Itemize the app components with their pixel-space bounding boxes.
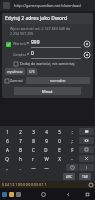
staticText: 2 bbox=[19, 129, 22, 135]
staticText: 8 bbox=[32, 138, 35, 144]
staticText: wyszlnosc bbox=[7, 69, 23, 74]
button[interactable]: Checkbox bbox=[5, 78, 23, 83]
staticText: 9 bbox=[45, 138, 48, 144]
staticText: C bbox=[32, 147, 35, 153]
button[interactable]: DOTS bbox=[79, 164, 94, 171]
button[interactable]: Q bbox=[1, 155, 13, 162]
staticText: X bbox=[58, 156, 61, 162]
staticText: 6 bbox=[6, 138, 9, 144]
button[interactable]: . bbox=[14, 164, 26, 171]
button[interactable]: U/S bbox=[27, 68, 37, 75]
staticText: 5 2 4 1 2 1 0 0 0 0 0 0 0 5 0 1 1 bbox=[2, 183, 47, 187]
button[interactable]: Notification 1 bbox=[9, 192, 14, 197]
button[interactable]: 7 bbox=[14, 137, 26, 144]
button[interactable]: F bbox=[66, 146, 78, 153]
staticText: TAB bbox=[82, 174, 89, 179]
staticText: , bbox=[6, 165, 8, 171]
staticText: Edytuj 2 adres jako Dword bbox=[5, 15, 68, 22]
staticText: * bbox=[27, 41, 29, 46]
staticText: 3 bbox=[32, 129, 35, 135]
staticText: F bbox=[71, 147, 74, 153]
staticText: h bbox=[19, 156, 22, 162]
button[interactable]: Recents bbox=[82, 189, 92, 199]
button[interactable]: — bbox=[27, 164, 39, 171]
button[interactable]: Options bbox=[84, 52, 90, 58]
staticText: : bbox=[71, 129, 73, 135]
button[interactable]: 8 bbox=[27, 137, 39, 144]
staticText: ABC bbox=[66, 174, 73, 179]
button[interactable]: 3 bbox=[27, 128, 39, 135]
staticText: Q bbox=[5, 156, 9, 162]
button[interactable]: Toggle field bbox=[6, 42, 11, 47]
button[interactable]: : bbox=[66, 128, 78, 135]
button[interactable]: Toggle field bbox=[5, 39, 90, 48]
staticText: 0 bbox=[31, 50, 34, 57]
button[interactable]: 0 bbox=[53, 137, 65, 144]
button[interactable]: 9 bbox=[40, 137, 52, 144]
button[interactable]: BACKSPACE bbox=[79, 128, 94, 135]
button[interactable]: Checkbox bbox=[14, 61, 93, 66]
button[interactable]: - bbox=[66, 155, 78, 162]
button[interactable]: Notification 0 bbox=[2, 192, 7, 197]
button[interactable]: Notification 2 bbox=[16, 192, 21, 197]
button[interactable]: 4 bbox=[40, 128, 52, 135]
button[interactable]: A bbox=[1, 146, 13, 153]
staticText: D bbox=[44, 147, 48, 153]
staticText: — bbox=[44, 165, 49, 171]
button[interactable]: 6 bbox=[1, 137, 13, 144]
staticText: B bbox=[19, 147, 22, 153]
button[interactable]: Zwiększ bbox=[5, 50, 90, 59]
button[interactable]: Home bbox=[38, 189, 48, 199]
button[interactable]: FX bbox=[79, 155, 94, 162]
staticText: http://gamequardian.net/download bbox=[14, 3, 81, 8]
button[interactable]: wyszlnosc bbox=[5, 68, 25, 75]
button[interactable]: 2 bbox=[14, 128, 26, 135]
button[interactable]: W bbox=[40, 155, 52, 162]
staticText: U/S bbox=[29, 69, 35, 74]
button[interactable]: Options bbox=[84, 41, 90, 47]
button[interactable]: X bbox=[53, 155, 65, 162]
staticText: - bbox=[71, 156, 73, 162]
button[interactable]: SQUARE bbox=[79, 146, 94, 153]
staticText: ; bbox=[71, 138, 73, 144]
staticText: A bbox=[6, 147, 9, 153]
button[interactable]: C bbox=[27, 146, 39, 153]
button[interactable]: D bbox=[40, 146, 52, 153]
button[interactable]: Mnoż bbox=[14, 87, 81, 95]
other: Checkbox bbox=[14, 62, 18, 66]
staticText: 1 bbox=[6, 129, 9, 135]
staticText: * bbox=[27, 52, 29, 57]
staticText: Zwiększ bbox=[13, 52, 27, 57]
staticText: 0 bbox=[58, 138, 61, 144]
button[interactable]: ; bbox=[66, 137, 78, 144]
staticText: W bbox=[44, 156, 49, 162]
button[interactable]: — bbox=[40, 164, 52, 171]
button[interactable]: B bbox=[14, 146, 26, 153]
button[interactable]: h bbox=[14, 155, 26, 162]
staticText: — bbox=[31, 165, 36, 171]
staticText: normalne bbox=[50, 78, 66, 83]
staticText: 2 294 967 295 bbox=[10, 31, 34, 36]
button[interactable]: TAB bbox=[79, 173, 91, 180]
staticText: Mnoż bbox=[42, 89, 53, 94]
staticText: Dodaj do wartości, nie zamieniaj bbox=[20, 61, 75, 66]
staticText: Wartość bbox=[13, 41, 27, 46]
button[interactable]: , bbox=[1, 164, 13, 171]
button[interactable]: normalne bbox=[26, 77, 90, 84]
other: Checkbox bbox=[5, 79, 9, 83]
button[interactable]: ABC bbox=[63, 173, 75, 180]
staticText: Wpisz wartość od -2 147 483 648 do bbox=[10, 26, 71, 31]
staticText: 5 bbox=[58, 129, 61, 135]
button[interactable]: E bbox=[53, 146, 65, 153]
button[interactable]: CAMERA bbox=[79, 137, 94, 144]
button[interactable]: r bbox=[27, 155, 39, 162]
staticText: 7 bbox=[19, 138, 22, 144]
button[interactable]: CLOCK bbox=[66, 164, 78, 171]
staticText: 4 bbox=[45, 129, 48, 135]
staticText: E bbox=[58, 147, 61, 153]
button[interactable]: Back bbox=[63, 189, 73, 199]
button[interactable]: 5 bbox=[53, 128, 65, 135]
button[interactable]: 1 bbox=[1, 128, 13, 135]
